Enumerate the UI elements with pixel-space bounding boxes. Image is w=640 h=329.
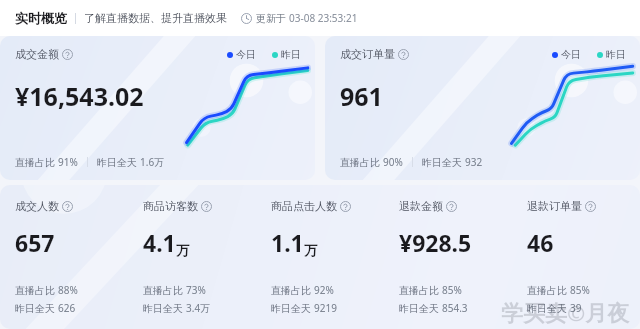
staticText: 9219: [314, 301, 337, 315]
button[interactable]: 成交订单量: [325, 36, 640, 180]
other: 说明: [201, 201, 212, 212]
staticText: 直播占比: [340, 155, 383, 169]
staticText: 商品点击人数: [271, 199, 337, 213]
staticText: 更新于: [256, 12, 286, 25]
button[interactable]: 退款金额: [384, 185, 512, 329]
staticText: 46: [527, 227, 554, 258]
staticText: 昨日全天: [527, 301, 570, 315]
button[interactable]: 退款订单量: [512, 185, 640, 329]
staticText: 直播占比: [15, 155, 58, 169]
staticText: 85%: [570, 283, 590, 297]
other: 说明: [62, 49, 73, 60]
staticText: 昨日全天: [97, 155, 140, 169]
staticText: 退款金额: [399, 199, 443, 213]
staticText: 成交人数: [15, 199, 59, 213]
staticText: 今日: [236, 48, 256, 61]
staticText: 85%: [442, 283, 462, 297]
staticText: 961: [340, 79, 383, 113]
staticText: 万: [176, 242, 189, 258]
staticText: 成交金额: [15, 47, 59, 61]
staticText: 昨日: [281, 48, 301, 61]
staticText: 昨日全天: [15, 301, 58, 315]
staticText: 学买卖©月夜: [501, 297, 630, 327]
staticText: 1.1: [271, 227, 304, 258]
staticText: 39: [570, 301, 582, 315]
other: 说明: [446, 201, 457, 212]
staticText: 商品访客数: [143, 199, 198, 213]
staticText: 昨日全天: [399, 301, 442, 315]
staticText: 1.6万: [140, 155, 165, 169]
staticText: 626: [58, 301, 76, 315]
button[interactable]: 商品点击人数: [256, 185, 384, 329]
staticText: 直播占比: [271, 283, 314, 297]
staticText: 03-08 23:53:21: [289, 11, 358, 25]
staticText: 91%: [58, 155, 78, 169]
button[interactable]: 商品访客数: [128, 185, 256, 329]
staticText: 昨日全天: [143, 301, 186, 315]
other: 说明: [398, 49, 409, 60]
staticText: 90%: [383, 155, 403, 169]
staticText: 实时概览: [15, 10, 67, 26]
staticText: 直播占比: [143, 283, 186, 297]
staticText: 昨日: [606, 48, 626, 61]
staticText: 932: [465, 155, 483, 169]
staticText: 88%: [58, 283, 78, 297]
staticText: ¥16,543.02: [15, 79, 144, 113]
staticText: 直播占比: [527, 283, 570, 297]
other: 说明: [62, 201, 73, 212]
staticText: 万: [304, 242, 317, 258]
staticText: ¥928.5: [399, 227, 472, 258]
staticText: 3.4万: [186, 301, 211, 315]
staticText: 直播占比: [399, 283, 442, 297]
staticText: 4.1: [143, 227, 176, 258]
button[interactable]: 成交人数: [0, 185, 128, 329]
staticText: 退款订单量: [527, 199, 582, 213]
button[interactable]: 成交金额: [0, 36, 315, 180]
staticText: 今日: [561, 48, 581, 61]
staticText: 73%: [186, 283, 206, 297]
staticText: 854.3: [442, 301, 468, 315]
other: 更新时间: [241, 13, 252, 24]
staticText: 直播占比: [15, 283, 58, 297]
staticText: 昨日全天: [422, 155, 465, 169]
staticText: 成交订单量: [340, 47, 395, 61]
staticText: 了解直播数据、提升直播效果: [84, 11, 227, 25]
staticText: 92%: [314, 283, 334, 297]
other: 说明: [340, 201, 351, 212]
other: 说明: [585, 201, 596, 212]
staticText: 657: [15, 227, 55, 258]
staticText: 昨日全天: [271, 301, 314, 315]
